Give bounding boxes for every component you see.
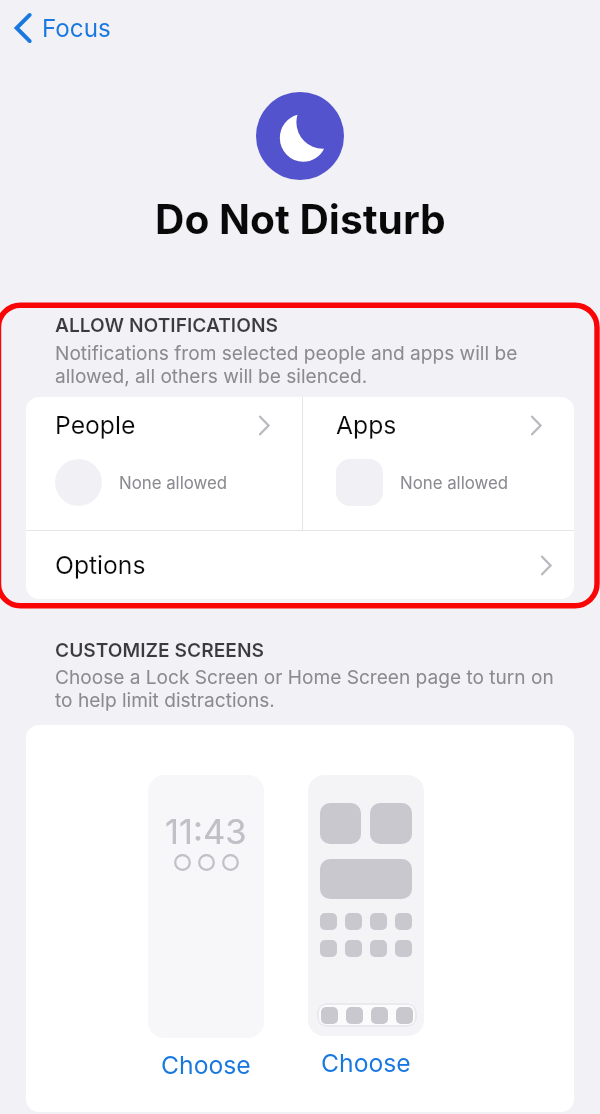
staticText: Options: [55, 550, 146, 580]
staticText: ALLOW NOTIFICATIONS: [55, 313, 278, 336]
button[interactable]: Apps: [303, 397, 574, 530]
staticText: None allowed: [119, 473, 228, 493]
button[interactable]: Back to Focus: [7, 8, 117, 48]
staticText: CUSTOMIZE SCREENS: [55, 638, 264, 661]
staticText: Notifications from selected people and a…: [55, 341, 518, 388]
staticText: 11:43: [165, 811, 247, 853]
staticText: Choose: [161, 1050, 251, 1080]
staticText: Apps: [336, 410, 397, 440]
button[interactable]: Options: [26, 531, 574, 599]
staticText: Do Not Disturb: [155, 195, 446, 244]
staticText: Choose a Lock Screen or Home Screen page…: [55, 665, 554, 712]
staticText: People: [55, 410, 136, 440]
staticText: Choose: [321, 1048, 411, 1078]
button[interactable]: Choose: [153, 1047, 259, 1083]
button[interactable]: Choose: [313, 1045, 419, 1081]
staticText: None allowed: [400, 473, 509, 493]
staticText: Focus: [42, 14, 111, 43]
button[interactable]: People: [26, 397, 302, 530]
